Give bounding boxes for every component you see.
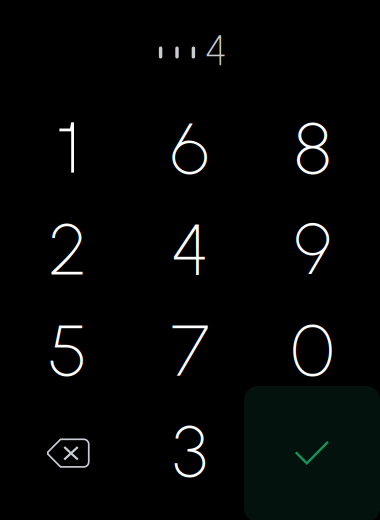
staticText: 8	[294, 104, 331, 192]
button[interactable]: Confirm	[244, 386, 380, 520]
staticText: 0	[291, 306, 334, 394]
staticText: 6	[170, 104, 209, 192]
staticText: 2	[48, 205, 86, 293]
button[interactable]: Delete	[6, 400, 129, 501]
button[interactable]: 4	[129, 198, 251, 299]
button[interactable]: 3	[129, 400, 251, 501]
staticText: 9	[294, 205, 331, 293]
staticText: 7	[171, 306, 209, 394]
staticText: 5	[48, 306, 87, 394]
staticText: 4	[205, 25, 227, 76]
button[interactable]: 5	[6, 299, 129, 400]
button[interactable]: 7	[129, 299, 251, 400]
button[interactable]: 6	[129, 97, 251, 198]
button[interactable]: 9	[251, 198, 374, 299]
staticText: 4	[171, 205, 209, 293]
staticText: 3	[172, 407, 207, 495]
button[interactable]: 0	[251, 299, 374, 400]
button[interactable]: 8	[251, 97, 374, 198]
button[interactable]	[6, 97, 129, 198]
button[interactable]: 2	[6, 198, 129, 299]
